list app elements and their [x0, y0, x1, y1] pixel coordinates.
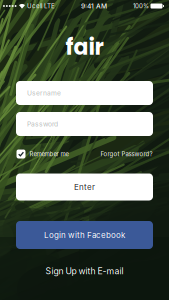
staticText: Password	[27, 120, 58, 128]
staticText: Remember me	[29, 150, 68, 158]
staticText: 100%	[133, 2, 149, 10]
button[interactable]: Enter	[16, 173, 153, 200]
staticText: Username	[27, 89, 61, 97]
button[interactable]: Forgot Password?	[100, 148, 152, 159]
staticText: Ucell LTE	[27, 2, 55, 10]
staticText: Sign Up with E-mail	[45, 266, 123, 276]
button[interactable]: Sign Up with E-mail	[16, 263, 152, 279]
button[interactable]: Remember me	[16, 148, 68, 159]
staticText: Login with Facebook	[44, 230, 125, 240]
staticText: Enter	[74, 182, 95, 192]
staticText: Forgot Password?	[100, 150, 152, 158]
staticText: fair	[65, 32, 103, 62]
button[interactable]: Login with Facebook	[16, 221, 153, 249]
staticText: 9:41 AM	[81, 2, 107, 10]
